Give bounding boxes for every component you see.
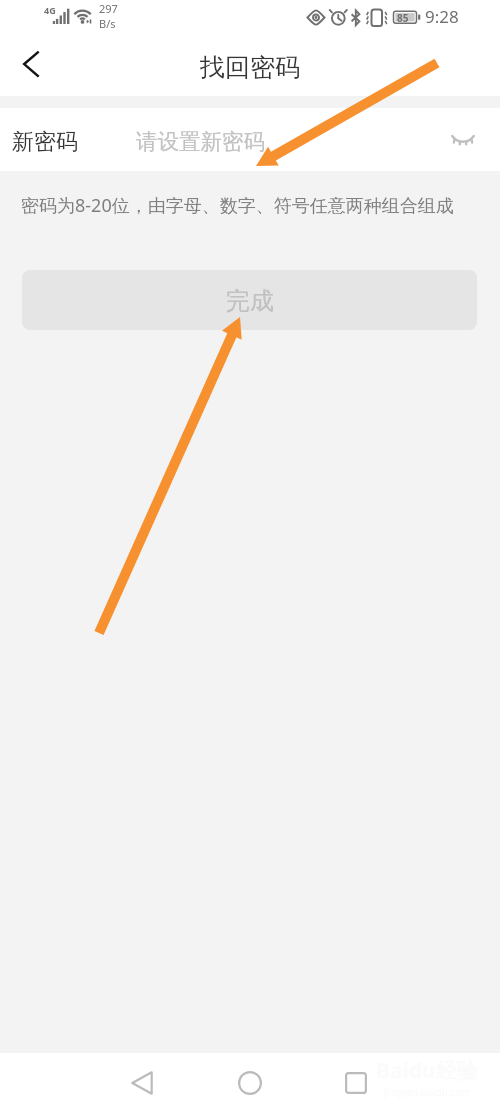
staticText: 找回密码 — [200, 52, 300, 83]
staticText: B/s — [99, 16, 116, 31]
button[interactable]: Back — [118, 1059, 166, 1107]
staticText: 4G — [44, 4, 56, 16]
button[interactable]: Back — [4, 37, 58, 91]
button[interactable]: 新密码 — [0, 108, 500, 171]
staticText: 297 — [99, 1, 118, 16]
staticText: 85 — [397, 11, 409, 25]
button[interactable]: Home — [226, 1059, 274, 1107]
staticText: 密码为8-20位，由字母、数字、符号任意两种组合组成 — [21, 193, 454, 218]
staticText: 完成 — [226, 286, 274, 316]
button[interactable]: Show password — [441, 118, 485, 162]
staticText: 新密码 — [12, 128, 78, 156]
staticText: 请设置新密码 — [136, 128, 265, 155]
staticText: 9:28 — [425, 5, 459, 28]
button[interactable]: 完成 — [22, 270, 477, 330]
button[interactable]: Recent apps — [332, 1059, 380, 1107]
